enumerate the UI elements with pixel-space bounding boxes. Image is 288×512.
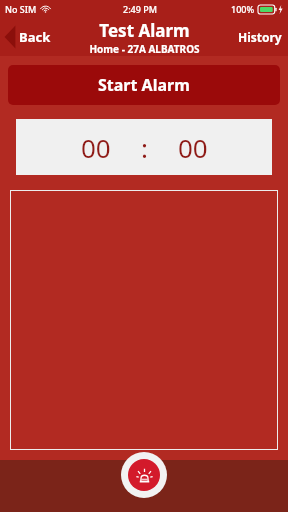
button[interactable]: Back (0, 18, 59, 56)
staticText: : (141, 130, 148, 165)
staticText: History (238, 29, 282, 45)
staticText: Test Alarm (99, 19, 190, 42)
staticText: 00 (81, 130, 111, 165)
button[interactable]: Panic alarm (121, 452, 167, 498)
staticText: Back (19, 28, 51, 46)
staticText: 100% (231, 3, 255, 15)
button[interactable]: History (232, 18, 288, 56)
button[interactable]: Start Alarm (8, 65, 280, 105)
staticText: 2:49 PM (123, 3, 157, 15)
staticText: Home - 27A ALBATROS (89, 42, 200, 56)
staticText: Start Alarm (98, 74, 190, 96)
staticText: No SIM (5, 3, 37, 15)
staticText: 00 (178, 130, 208, 165)
